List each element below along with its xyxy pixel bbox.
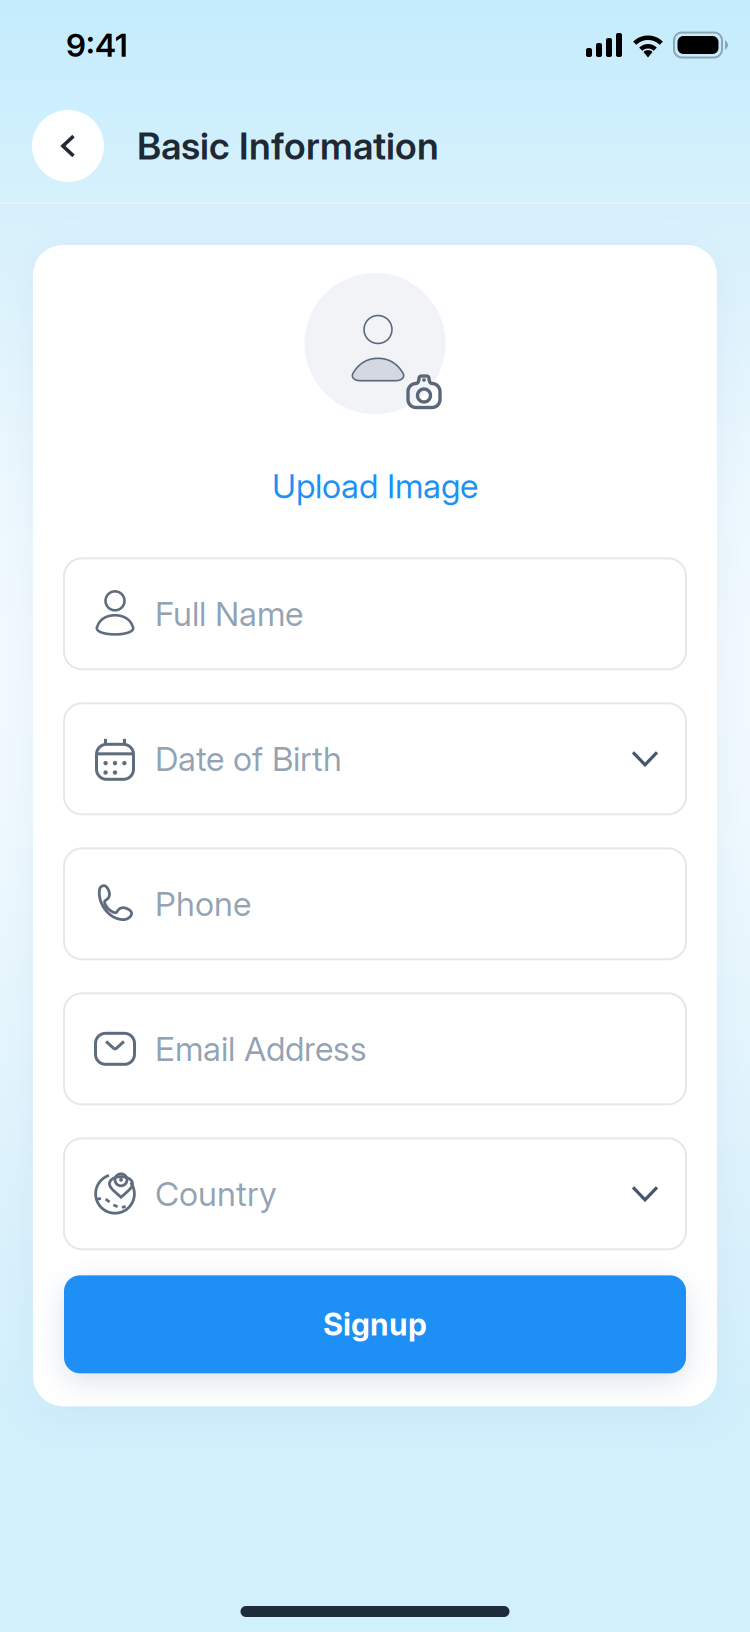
button[interactable]: Signup xyxy=(64,1275,686,1373)
button[interactable]: Change profile photo xyxy=(304,273,445,414)
staticText: Upload Image xyxy=(272,466,478,506)
staticText: Country xyxy=(155,1174,277,1214)
button[interactable]: Date of Birth xyxy=(64,703,686,814)
button[interactable]: Phone xyxy=(64,848,686,959)
staticText: Date of Birth xyxy=(155,739,342,779)
staticText: Phone xyxy=(155,884,251,924)
staticText: Signup xyxy=(323,1306,427,1343)
button[interactable]: Full Name xyxy=(64,558,686,669)
button[interactable]: Email Address xyxy=(64,993,686,1104)
staticText: Basic Information xyxy=(137,123,439,169)
staticText: 9:41 xyxy=(66,26,128,64)
staticText: Email Address xyxy=(155,1029,367,1069)
button[interactable]: Upload Image xyxy=(272,461,478,511)
staticText: Full Name xyxy=(155,594,303,634)
button[interactable]: Country xyxy=(64,1138,686,1249)
button[interactable]: Back xyxy=(32,110,104,182)
